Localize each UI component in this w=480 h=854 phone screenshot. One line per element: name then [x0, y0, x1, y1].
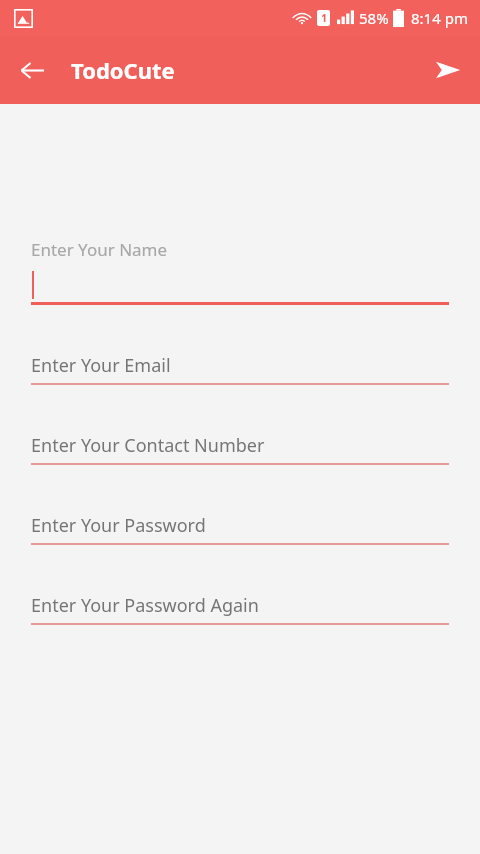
- button[interactable]: Enter Your Name: [0, 104, 480, 308]
- button[interactable]: Enter Your Contact Number: [0, 104, 480, 467]
- staticText: Enter Your Password: [31, 513, 206, 538]
- staticText: Enter Your Password Again: [31, 593, 259, 618]
- button[interactable]: Enter Your Email: [0, 104, 480, 387]
- staticText: 8:14 pm: [411, 8, 468, 28]
- staticText: Enter Your Name: [31, 238, 168, 261]
- button[interactable]: Enter Your Password Again: [0, 104, 480, 627]
- staticText: Enter Your Email: [31, 353, 171, 378]
- staticText: 58%: [359, 8, 389, 28]
- staticText: 1: [321, 11, 327, 25]
- button[interactable]: Enter Your Password: [0, 104, 480, 547]
- staticText: Enter Your Contact Number: [31, 433, 265, 458]
- button[interactable]: Back: [8, 46, 56, 94]
- staticText: TodoCute: [71, 55, 175, 85]
- button[interactable]: Send: [424, 46, 472, 94]
